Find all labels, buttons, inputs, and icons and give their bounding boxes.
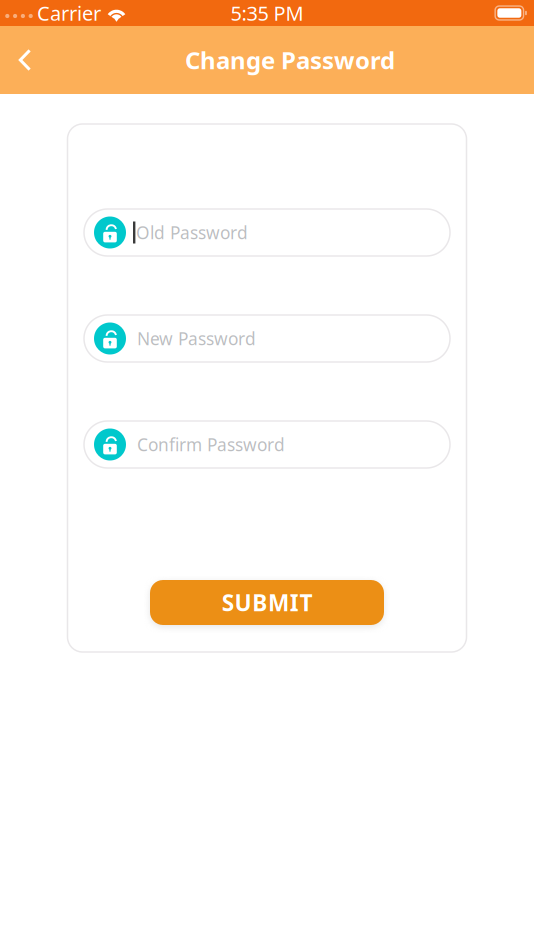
button[interactable]: Confirm Password [84, 421, 450, 468]
staticText: New Password [137, 327, 256, 350]
button[interactable]: New Password [84, 315, 450, 362]
button[interactable]: Back [0, 31, 56, 89]
staticText: 5:35 PM [230, 0, 303, 26]
button[interactable]: SUBMIT [150, 580, 384, 625]
staticText: Change Password [185, 44, 395, 76]
staticText: SUBMIT [222, 587, 312, 617]
staticText: Carrier [37, 0, 101, 26]
staticText: Old Password [136, 221, 248, 244]
button[interactable]: Old Password [84, 209, 450, 256]
staticText: Confirm Password [137, 433, 285, 456]
